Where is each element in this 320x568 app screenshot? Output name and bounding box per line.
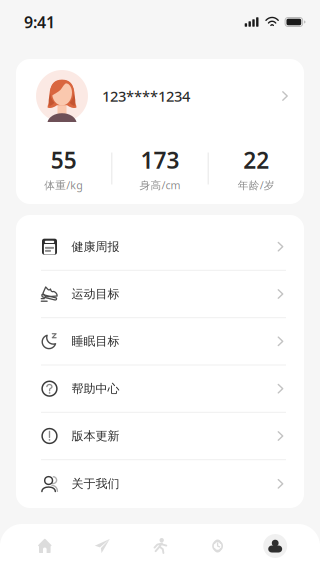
button[interactable]: Discover (74, 524, 131, 568)
button[interactable]: Profile (246, 524, 304, 568)
button[interactable]: 版本更新 (16, 413, 304, 460)
button[interactable]: Activity (131, 524, 189, 568)
staticText: 身高/cm (139, 178, 180, 192)
staticText: 运动目标 (71, 287, 119, 301)
button[interactable]: 运动目标 (16, 271, 304, 318)
button[interactable]: 健康周报 (16, 223, 304, 271)
staticText: 123****1234 (102, 86, 190, 106)
staticText: 关于我们 (71, 476, 119, 491)
staticText: 22 (243, 145, 269, 175)
staticText: 173 (140, 145, 179, 175)
staticText: 9:41 (24, 11, 55, 33)
button[interactable]: 123****1234 (16, 56, 304, 136)
staticText: 版本更新 (71, 429, 119, 443)
button[interactable]: 关于我们 (16, 460, 304, 507)
button[interactable]: 帮助中心 (16, 365, 304, 413)
staticText: 年龄/岁 (238, 178, 275, 192)
staticText: 睡眠目标 (71, 334, 119, 349)
button[interactable]: Home (16, 524, 74, 568)
button[interactable]: 睡眠目标 (16, 318, 304, 365)
staticText: 健康周报 (71, 239, 119, 254)
staticText: 55 (51, 145, 77, 175)
staticText: 帮助中心 (71, 381, 119, 396)
button[interactable]: Device (189, 524, 246, 568)
staticText: 体重/kg (44, 178, 83, 192)
